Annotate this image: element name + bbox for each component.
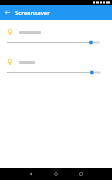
button[interactable]: Brightness <box>0 26 112 47</box>
button[interactable]: Home <box>51 169 61 179</box>
button[interactable]: Navigate up <box>0 5 15 20</box>
button[interactable]: Brightness <box>0 56 112 77</box>
button[interactable]: Back <box>26 169 36 179</box>
other: Brightness <box>7 59 13 65</box>
button[interactable]: Brightness slider <box>7 38 108 47</box>
other: Brightness <box>7 29 13 35</box>
button[interactable]: Recent apps <box>76 169 86 179</box>
staticText: Screensaver <box>15 9 50 17</box>
button[interactable]: Brightness slider <box>7 68 108 77</box>
